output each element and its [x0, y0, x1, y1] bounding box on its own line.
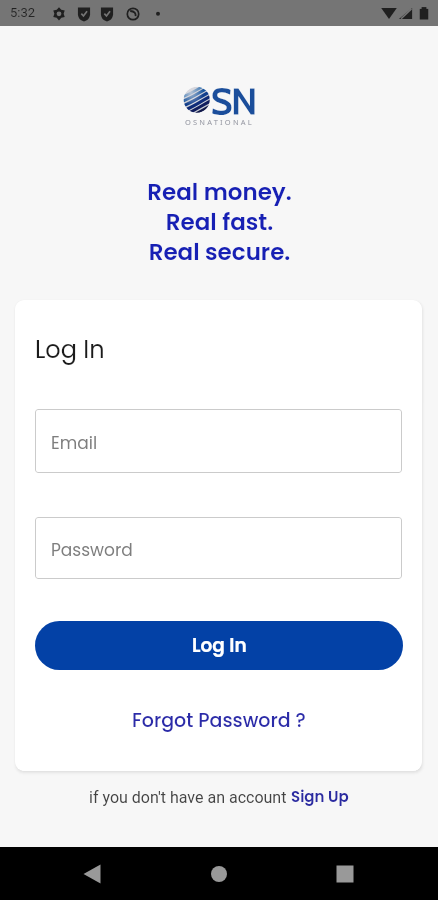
- staticText: if you don't have an account: [89, 788, 291, 807]
- button[interactable]: Back: [68, 850, 116, 898]
- button[interactable]: Forgot Password ?: [15, 705, 422, 735]
- staticText: 5:32: [10, 5, 36, 20]
- staticText: Password: [51, 538, 133, 562]
- button[interactable]: Recent apps: [321, 850, 369, 898]
- staticText: Email: [51, 431, 98, 455]
- staticText: SN: [211, 79, 257, 123]
- staticText: Forgot Password ?: [132, 707, 306, 734]
- button[interactable]: Home: [195, 850, 243, 898]
- staticText: Log In: [192, 633, 247, 659]
- staticText: OSNATIONAL: [185, 117, 254, 127]
- button[interactable]: Log In: [35, 621, 403, 670]
- button[interactable]: Sign Up: [291, 786, 349, 807]
- staticText: Sign Up: [291, 786, 349, 807]
- staticText: Log In: [35, 333, 105, 367]
- button[interactable]: Email: [35, 409, 402, 473]
- button[interactable]: Password: [35, 517, 402, 579]
- staticText: Real money. Real fast. Real secure.: [147, 176, 292, 268]
